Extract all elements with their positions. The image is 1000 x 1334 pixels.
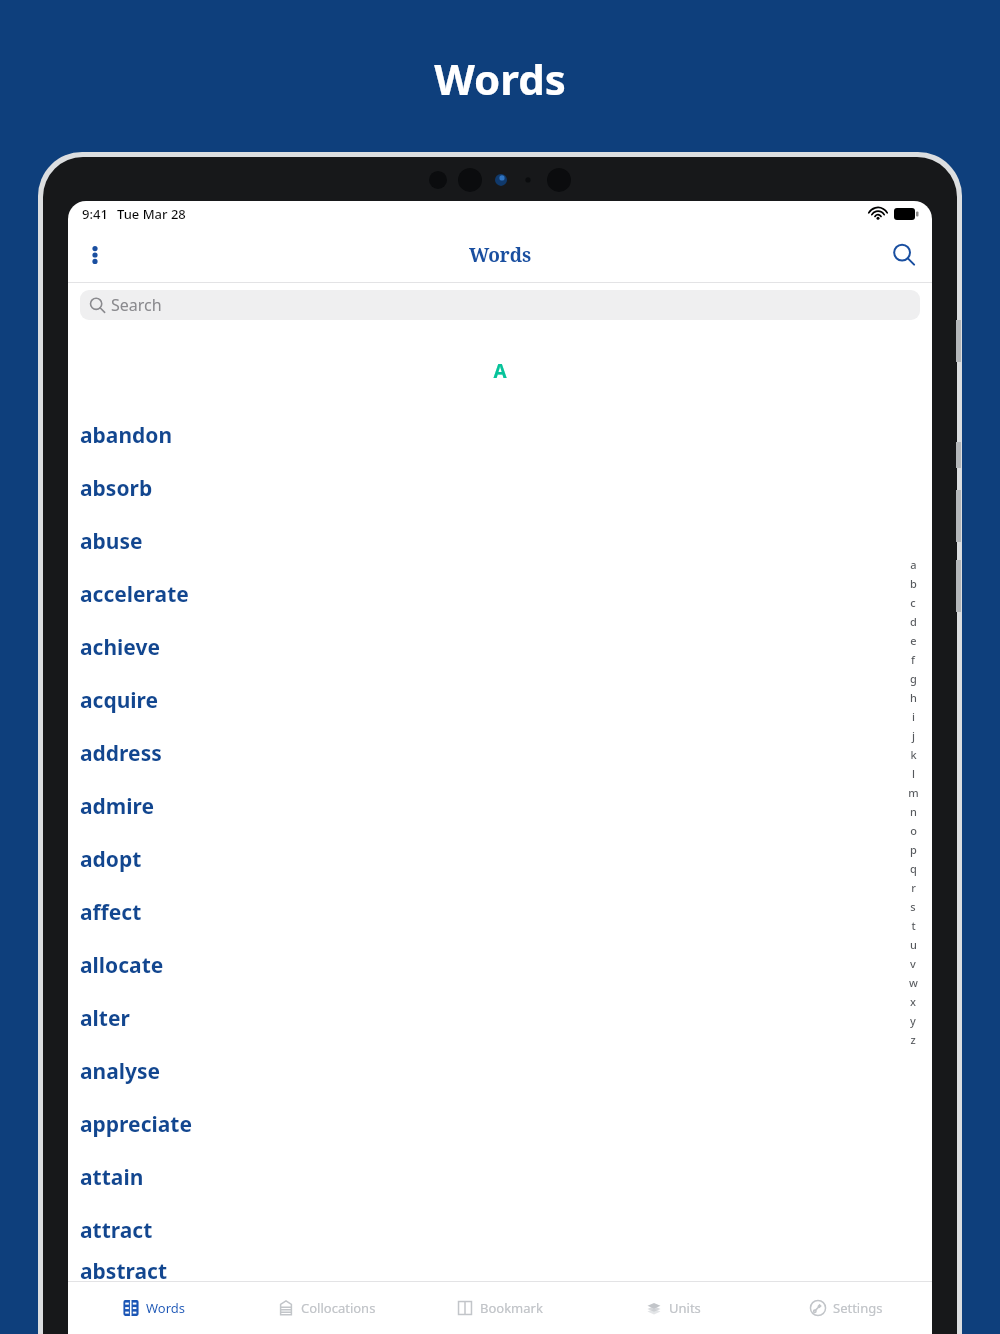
button[interactable]: attract (68, 1204, 932, 1257)
button[interactable]: allocate (68, 939, 932, 992)
button[interactable]: Alphabet index (904, 557, 922, 1051)
button[interactable]: abandon (68, 409, 932, 462)
staticText: Words (0, 50, 1000, 107)
staticText: b (910, 576, 917, 595)
staticText: attract (80, 1216, 153, 1245)
staticText: achieve (80, 633, 160, 662)
button[interactable]: Collocations (240, 1282, 413, 1334)
button[interactable]: Bookmark (413, 1282, 586, 1334)
button[interactable]: Units (586, 1282, 759, 1334)
staticText: affect (80, 898, 142, 927)
button[interactable]: Search (876, 227, 932, 282)
button[interactable]: acquire (68, 674, 932, 727)
staticText: address (80, 739, 162, 768)
staticText: Search (111, 294, 162, 316)
staticText: z (910, 1032, 916, 1051)
button[interactable]: Search (80, 290, 920, 320)
staticText: q (910, 861, 917, 880)
staticText: h (910, 690, 917, 709)
button[interactable]: appreciate (68, 1098, 932, 1151)
button[interactable]: abstract (68, 1257, 932, 1281)
staticText: f (911, 652, 915, 671)
button[interactable]: Settings (759, 1282, 932, 1334)
staticText: u (910, 937, 917, 956)
staticText: Words (146, 1299, 186, 1317)
staticText: r (911, 880, 916, 899)
button[interactable]: abuse (68, 515, 932, 568)
button[interactable]: admire (68, 780, 932, 833)
staticText: attain (80, 1163, 144, 1192)
staticText: m (908, 785, 919, 804)
staticText: adopt (80, 845, 142, 874)
staticText: s (910, 899, 916, 918)
staticText: Words (469, 242, 532, 268)
staticText: Settings (833, 1299, 883, 1317)
staticText: p (910, 842, 917, 861)
staticText: Collocations (301, 1299, 376, 1317)
staticText: appreciate (80, 1110, 192, 1139)
staticText: accelerate (80, 580, 189, 609)
staticText: w (909, 975, 918, 994)
staticText: g (910, 671, 917, 690)
staticText: d (910, 614, 917, 633)
staticText: abstract (80, 1257, 168, 1281)
button[interactable]: analyse (68, 1045, 932, 1098)
staticText: absorb (80, 474, 153, 503)
staticText: e (910, 633, 917, 652)
button[interactable]: adopt (68, 833, 932, 886)
button[interactable]: affect (68, 886, 932, 939)
staticText: j (912, 728, 915, 747)
staticText: c (910, 595, 916, 614)
button[interactable]: More options (68, 228, 122, 282)
staticText: x (910, 994, 916, 1013)
button[interactable]: alter (68, 992, 932, 1045)
staticText: v (910, 956, 916, 975)
staticText: acquire (80, 686, 159, 715)
staticText: o (910, 823, 917, 842)
staticText: n (910, 804, 917, 823)
staticText: A (68, 358, 932, 384)
staticText: analyse (80, 1057, 161, 1086)
button[interactable]: achieve (68, 621, 932, 674)
staticText: abuse (80, 527, 143, 556)
staticText: y (910, 1013, 916, 1032)
staticText: allocate (80, 951, 164, 980)
staticText: 9:41 (82, 205, 108, 223)
staticText: a (910, 557, 917, 576)
button[interactable]: attain (68, 1151, 932, 1204)
button[interactable]: address (68, 727, 932, 780)
staticText: k (910, 747, 917, 766)
staticText: l (912, 766, 915, 785)
button[interactable]: Words (68, 1282, 240, 1334)
staticText: Tue Mar 28 (117, 205, 186, 223)
button[interactable]: absorb (68, 462, 932, 515)
staticText: admire (80, 792, 155, 821)
staticText: Units (669, 1299, 701, 1317)
staticText: Bookmark (480, 1299, 543, 1317)
staticText: abandon (80, 421, 173, 450)
staticText: i (912, 709, 915, 728)
staticText: alter (80, 1004, 130, 1033)
staticText: t (911, 918, 916, 937)
button[interactable]: accelerate (68, 568, 932, 621)
